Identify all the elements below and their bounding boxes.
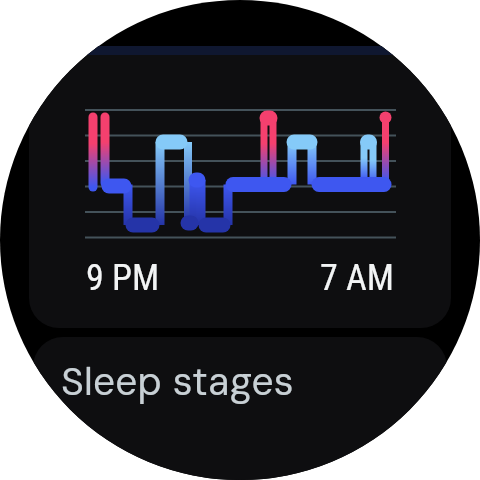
staticText: Sleep stages xyxy=(61,356,294,407)
button[interactable]: 9 PM xyxy=(29,46,451,328)
staticText: 7 AM xyxy=(320,257,394,299)
staticText: 9 PM xyxy=(86,257,160,299)
button[interactable]: Sleep stages xyxy=(33,337,447,480)
